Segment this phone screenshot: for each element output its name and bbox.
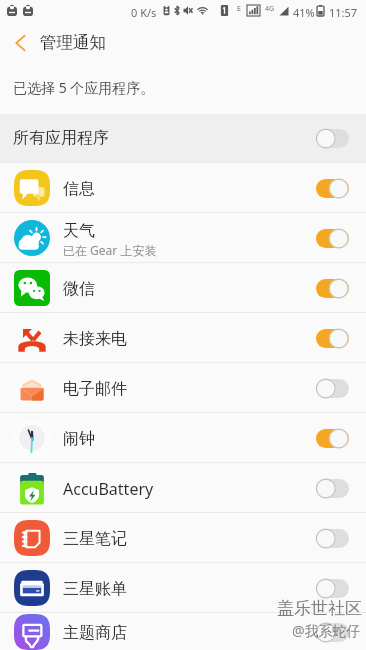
button[interactable]: Switch off xyxy=(316,579,349,598)
staticText: 11:57 xyxy=(329,5,358,20)
button[interactable]: 未接来电 xyxy=(0,313,366,362)
staticText: AccuBattery xyxy=(63,478,154,500)
staticText: 电子邮件 xyxy=(63,379,127,399)
button[interactable]: 微信 xyxy=(0,263,366,312)
staticText: 4G xyxy=(265,4,275,14)
staticText: 已在 Gear 上安装 xyxy=(63,242,157,258)
button[interactable]: Switch on xyxy=(316,429,349,448)
button[interactable]: 三星账单 xyxy=(0,563,366,612)
button[interactable]: 信息 xyxy=(0,163,366,212)
button[interactable]: Switch off xyxy=(316,479,349,498)
staticText: 主题商店 xyxy=(63,623,127,643)
button[interactable]: Switch on xyxy=(316,279,349,298)
button[interactable]: Switch off xyxy=(316,379,349,398)
button[interactable]: Switch on xyxy=(316,329,349,348)
staticText: 所有应用程序 xyxy=(13,128,109,148)
staticText: 微信 xyxy=(63,279,95,299)
staticText: 三星笔记 xyxy=(63,529,127,549)
staticText: 未接来电 xyxy=(63,329,127,349)
staticText: @我系蛇仔 xyxy=(292,621,361,640)
button[interactable]: 主题商店 xyxy=(0,613,366,650)
staticText: 闹钟 xyxy=(63,429,95,449)
staticText: 0 K/s xyxy=(131,5,157,20)
button[interactable]: Back xyxy=(0,24,40,61)
button[interactable]: Switch on xyxy=(316,179,349,198)
button[interactable]: Switch off xyxy=(316,129,349,148)
button[interactable]: 天气 xyxy=(0,213,366,262)
staticText: 天气 xyxy=(63,221,95,241)
button[interactable]: Switch off xyxy=(316,623,349,642)
button[interactable]: 电子邮件 xyxy=(0,363,366,412)
staticText: 信息 xyxy=(63,179,95,199)
staticText: 盖乐世社区 xyxy=(277,598,362,619)
staticText: 41% xyxy=(293,5,315,20)
button[interactable]: Switch off xyxy=(316,529,349,548)
button[interactable]: AccuBattery xyxy=(0,463,366,512)
button[interactable]: 闹钟 xyxy=(0,413,366,462)
staticText: E xyxy=(237,4,241,14)
staticText: 管理通知 xyxy=(40,32,106,53)
button[interactable]: 所有应用程序 xyxy=(0,114,366,162)
button[interactable]: Switch on xyxy=(316,229,349,248)
staticText: 已选择 5 个应用程序。 xyxy=(13,78,155,97)
button[interactable]: 三星笔记 xyxy=(0,513,366,562)
staticText: 三星账单 xyxy=(63,579,127,599)
